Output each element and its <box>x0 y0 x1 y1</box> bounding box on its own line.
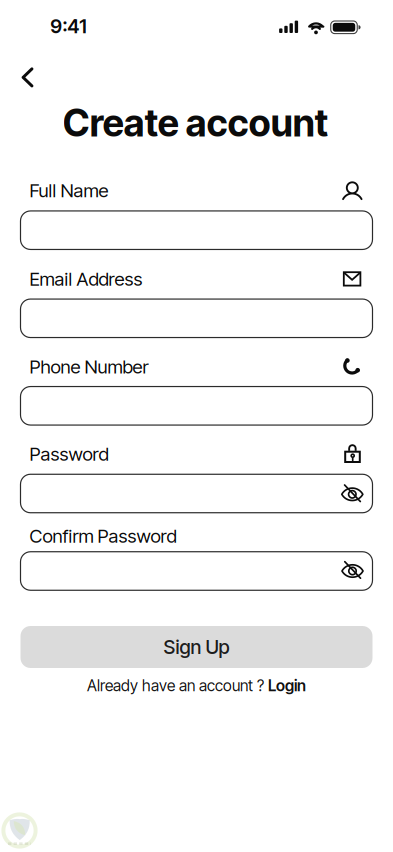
staticText: Full Name <box>29 179 108 202</box>
staticText: Confirm Password <box>29 525 176 547</box>
staticText: Create account <box>63 100 328 145</box>
staticText: 9:41 <box>50 15 86 38</box>
staticText: Email Address <box>29 268 142 290</box>
staticText: Password <box>29 443 108 465</box>
staticText: Login <box>268 676 306 695</box>
button[interactable]: Show confirm password <box>339 558 365 584</box>
staticText: Sign Up <box>163 635 229 659</box>
button[interactable]: Back <box>5 55 49 99</box>
staticText: Phone Number <box>29 355 148 378</box>
staticText: Already have an account ? <box>87 676 264 695</box>
button[interactable]: Sign Up <box>20 626 372 668</box>
button[interactable]: Show password <box>339 481 365 507</box>
button[interactable]: Login <box>268 676 306 695</box>
